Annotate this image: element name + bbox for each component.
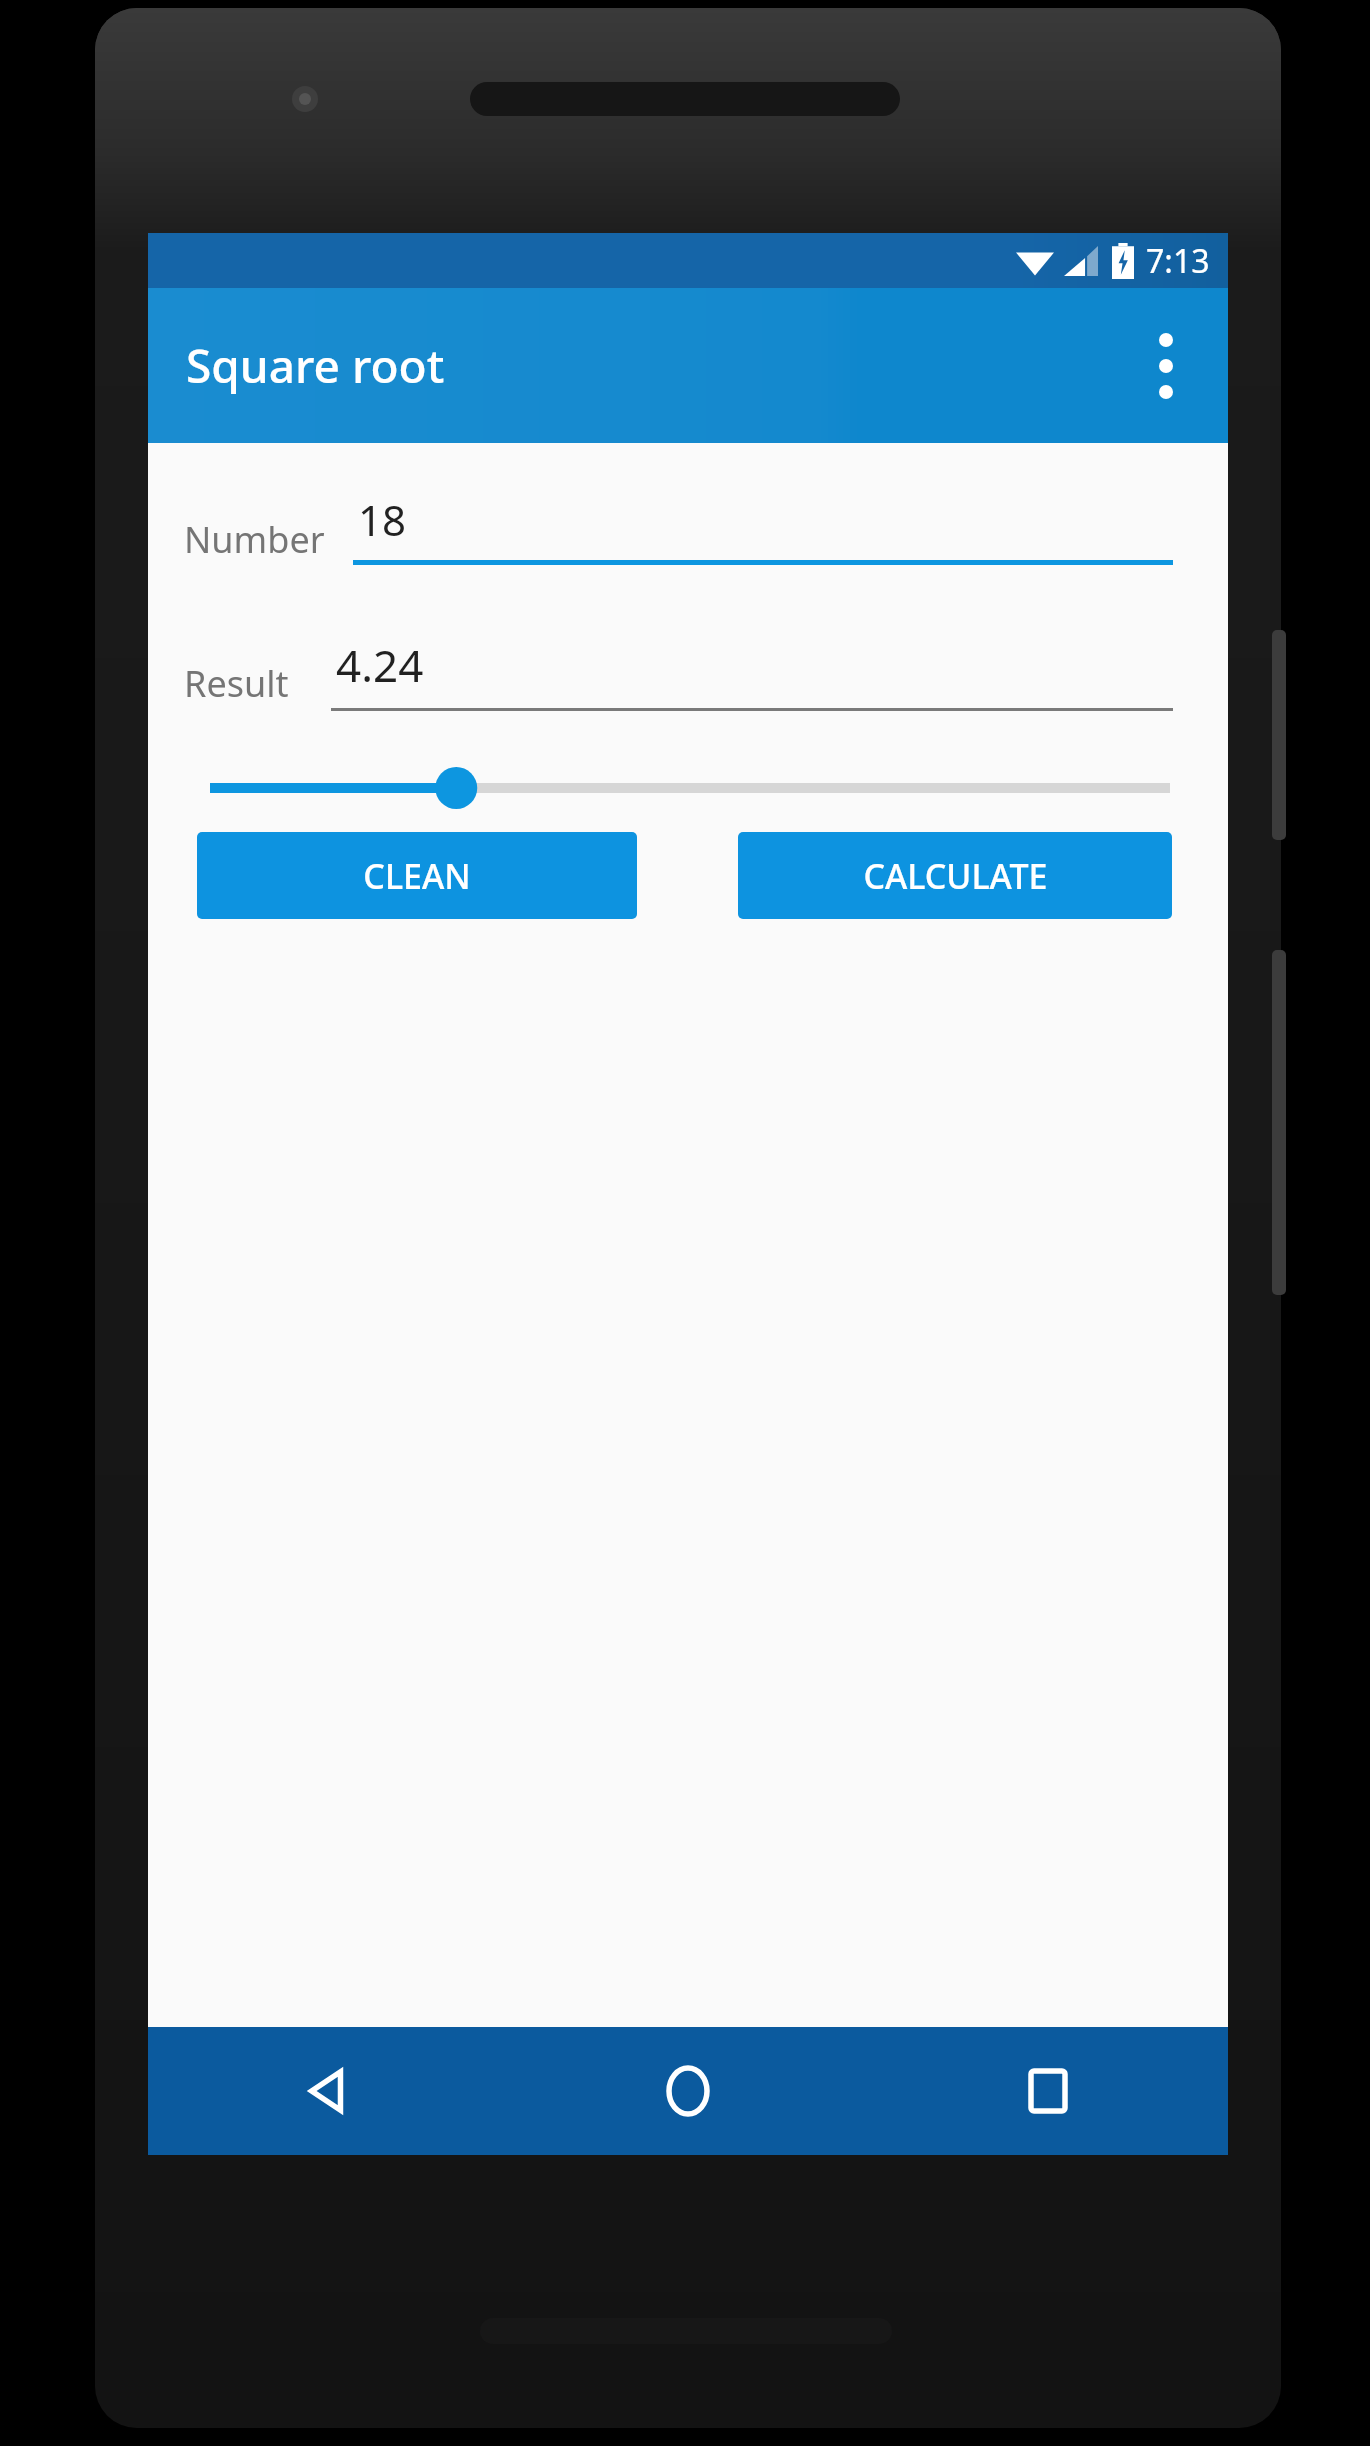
button[interactable]: CALCULATE <box>738 832 1172 919</box>
staticText: 4.24 <box>336 635 424 695</box>
button[interactable]: Value slider <box>188 743 1188 833</box>
button[interactable]: Back <box>148 2027 508 2155</box>
staticText: 18 <box>358 491 407 548</box>
button[interactable]: 4.24 <box>331 621 1173 711</box>
button[interactable]: More options <box>1118 318 1214 414</box>
button[interactable]: Square root <box>148 288 1228 443</box>
staticText: Result <box>184 659 289 708</box>
button[interactable]: CLEAN <box>197 832 637 919</box>
staticText: Square root <box>186 334 445 397</box>
button[interactable]: Recent apps <box>868 2027 1228 2155</box>
staticText: CALCULATE <box>863 853 1048 899</box>
button[interactable]: 18 <box>353 475 1173 565</box>
button[interactable]: Home <box>508 2027 868 2155</box>
staticText: Number <box>184 515 325 564</box>
staticText: CLEAN <box>363 853 471 899</box>
staticText: 7:13 <box>1146 239 1210 283</box>
